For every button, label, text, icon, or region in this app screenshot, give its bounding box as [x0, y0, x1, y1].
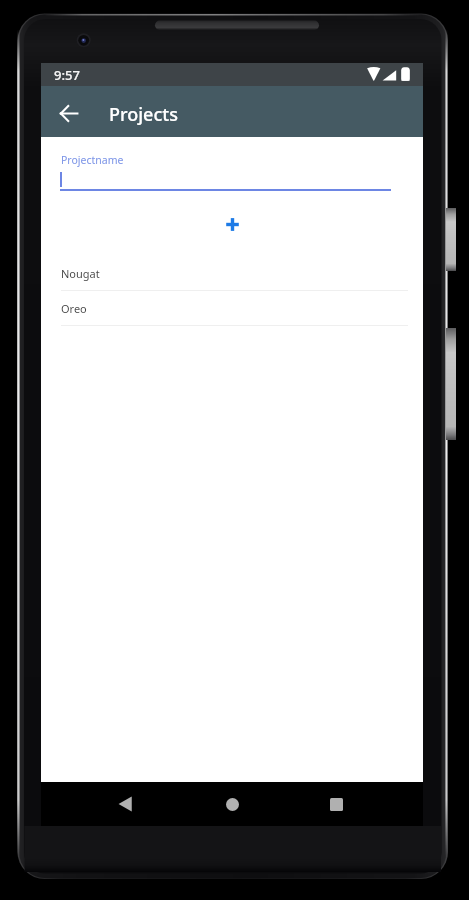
button[interactable]: Add project — [214, 206, 250, 242]
button[interactable]: Home — [210, 782, 254, 826]
button[interactable]: Nougat — [41, 256, 423, 291]
button[interactable]: Projectname — [60, 147, 391, 192]
staticText: Projectname — [61, 153, 124, 167]
staticText: Nougat — [61, 266, 100, 281]
button[interactable]: Back — [103, 782, 147, 826]
button[interactable]: Oreo — [41, 291, 423, 326]
button[interactable]: Navigate up — [52, 97, 85, 130]
staticText: Oreo — [61, 301, 87, 316]
button[interactable]: Recent apps — [314, 782, 359, 826]
staticText: 9:57 — [54, 66, 80, 84]
staticText: Projects — [109, 102, 178, 127]
